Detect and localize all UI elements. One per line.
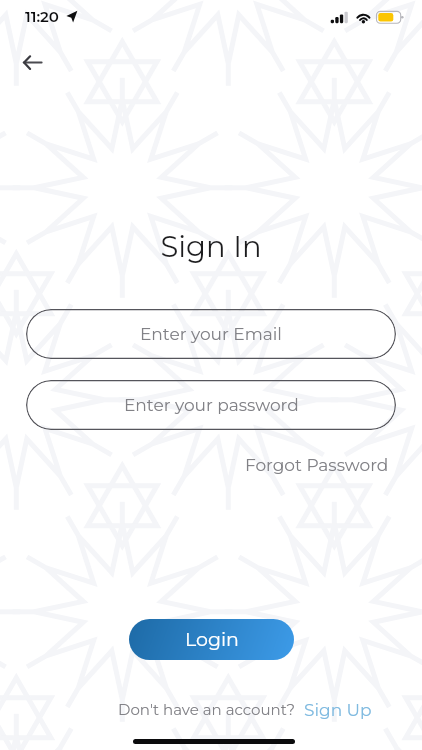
staticText: Enter your password [124,395,299,416]
staticText: 11:20 [25,7,59,25]
button[interactable]: Enter your password [26,380,396,430]
button[interactable]: Back [11,46,44,79]
button[interactable]: Sign Up [300,697,376,724]
staticText: Enter your Email [140,324,282,345]
button[interactable]: Login [129,619,294,660]
button[interactable]: Forgot Password [239,452,395,479]
staticText: Forgot Password [245,455,389,476]
staticText: Login [185,628,239,651]
staticText: Don't have an account? [118,700,296,718]
button[interactable]: Enter your Email [26,309,396,359]
staticText: Sign In [0,229,422,264]
staticText: Sign Up [304,700,372,721]
